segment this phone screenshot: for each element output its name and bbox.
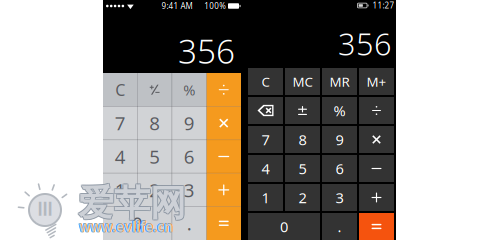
button[interactable]: 7: [103, 106, 137, 140]
button[interactable]: 4: [248, 155, 283, 182]
staticText: www.evlife.cn: [78, 218, 172, 235]
staticText: C: [261, 73, 269, 90]
button[interactable]: 0: [103, 207, 172, 240]
button[interactable]: Multiply: [206, 106, 241, 140]
staticText: 8: [298, 130, 306, 149]
staticText: 8: [149, 111, 160, 135]
button[interactable]: 9: [172, 106, 206, 140]
staticText: 7: [115, 111, 126, 135]
button[interactable]: 2: [285, 184, 320, 211]
button[interactable]: Plus minus: [137, 73, 172, 106]
button[interactable]: 0: [248, 213, 320, 240]
button[interactable]: Equals: [359, 213, 394, 240]
button[interactable]: 6: [322, 155, 357, 182]
staticText: %: [333, 101, 345, 120]
staticText: www.evlife.cn: [79, 218, 173, 236]
staticText: 爱苹网: [77, 181, 185, 225]
staticText: 100%: [204, 1, 226, 11]
staticText: www.evlife.cn: [79, 218, 173, 236]
button[interactable]: .: [172, 207, 206, 240]
button[interactable]: 9: [322, 126, 357, 153]
staticText: lll: [37, 197, 52, 220]
button[interactable]: Plus: [206, 173, 241, 207]
button[interactable]: .: [322, 213, 357, 240]
button[interactable]: 8: [137, 106, 172, 140]
button[interactable]: 5: [285, 155, 320, 182]
button[interactable]: Minus: [359, 155, 394, 182]
button[interactable]: Divide: [359, 97, 394, 124]
staticText: 爱苹网: [78, 181, 186, 225]
button[interactable]: Multiply: [359, 126, 394, 153]
staticText: 爱苹网: [79, 181, 187, 225]
staticText: %: [183, 80, 195, 99]
staticText: .: [337, 217, 341, 236]
button[interactable]: 3: [322, 184, 357, 211]
staticText: 爱苹网: [77, 180, 185, 224]
staticText: www.evlife.cn: [79, 217, 173, 235]
staticText: 4: [261, 159, 269, 178]
staticText: MR: [329, 73, 349, 90]
button[interactable]: C: [103, 73, 137, 106]
staticText: 3: [184, 177, 195, 202]
staticText: 3: [335, 188, 343, 207]
button[interactable]: Minus: [206, 140, 241, 173]
button[interactable]: 2: [137, 173, 172, 207]
staticText: 爱苹网: [79, 180, 187, 224]
staticText: 爱苹网: [78, 180, 186, 224]
staticText: 0: [132, 211, 143, 236]
staticText: 7: [261, 130, 269, 149]
button[interactable]: Plus minus: [285, 97, 320, 124]
staticText: MC: [292, 73, 312, 90]
button[interactable]: Plus: [359, 184, 394, 211]
staticText: 1: [261, 188, 269, 207]
button[interactable]: 4: [103, 140, 137, 173]
button[interactable]: Divide: [206, 73, 241, 106]
button[interactable]: 7: [248, 126, 283, 153]
staticText: 0: [280, 217, 288, 236]
staticText: www.evlife.cn: [78, 218, 172, 236]
button[interactable]: MC: [285, 68, 320, 95]
staticText: 9:41 AM: [161, 1, 192, 11]
button[interactable]: 3: [172, 173, 206, 207]
staticText: www.evlife.cn: [78, 217, 172, 235]
staticText: 356: [338, 23, 392, 64]
staticText: C: [115, 79, 125, 100]
staticText: www.evlife.cn: [79, 218, 173, 235]
staticText: 9: [335, 130, 343, 149]
button[interactable]: M+: [359, 68, 394, 95]
staticText: 11:27: [372, 0, 394, 11]
button[interactable]: MR: [322, 68, 357, 95]
button[interactable]: %: [172, 73, 206, 106]
button[interactable]: C: [248, 68, 283, 95]
staticText: 2: [149, 177, 160, 202]
staticText: 1: [115, 177, 126, 202]
staticText: www.evlife.cn: [79, 217, 173, 235]
button[interactable]: %: [322, 97, 357, 124]
staticText: 9: [184, 111, 195, 135]
button[interactable]: 1: [103, 173, 137, 207]
staticText: 6: [184, 144, 195, 169]
staticText: 爱苹网: [78, 182, 186, 226]
staticText: 356: [178, 29, 235, 73]
button[interactable]: 8: [285, 126, 320, 153]
staticText: 爱苹网: [79, 182, 187, 226]
staticText: M+: [366, 73, 386, 90]
staticText: .: [187, 211, 192, 236]
staticText: 爱苹网: [77, 182, 185, 226]
button[interactable]: Equals: [206, 207, 241, 240]
staticText: 4: [115, 144, 126, 169]
button[interactable]: 5: [137, 140, 172, 173]
staticText: 5: [298, 159, 306, 178]
staticText: www.evlife.cn: [79, 218, 173, 235]
button[interactable]: 6: [172, 140, 206, 173]
button[interactable]: Backspace: [248, 97, 283, 124]
button[interactable]: 1: [248, 184, 283, 211]
staticText: 5: [149, 144, 160, 169]
staticText: 2: [298, 188, 306, 207]
staticText: 6: [335, 159, 343, 178]
